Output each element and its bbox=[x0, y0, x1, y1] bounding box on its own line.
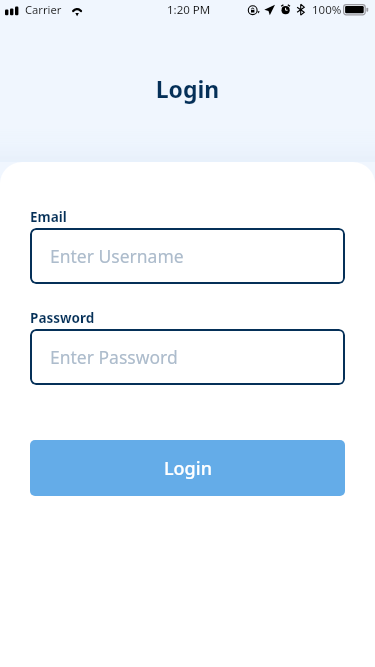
staticText: 1:20 PM bbox=[167, 2, 211, 18]
staticText: Enter Password bbox=[50, 345, 178, 369]
staticText: Login bbox=[164, 456, 212, 481]
staticText: 100% bbox=[312, 2, 342, 18]
button[interactable]: Enter Password bbox=[30, 329, 345, 385]
staticText: Login bbox=[0, 73, 375, 104]
staticText: Password bbox=[30, 309, 95, 327]
button[interactable]: Enter Username bbox=[30, 228, 345, 284]
button[interactable]: Login bbox=[30, 440, 345, 496]
staticText: Enter Username bbox=[50, 244, 184, 268]
staticText: Email bbox=[30, 208, 67, 226]
staticText: Carrier bbox=[25, 2, 62, 17]
